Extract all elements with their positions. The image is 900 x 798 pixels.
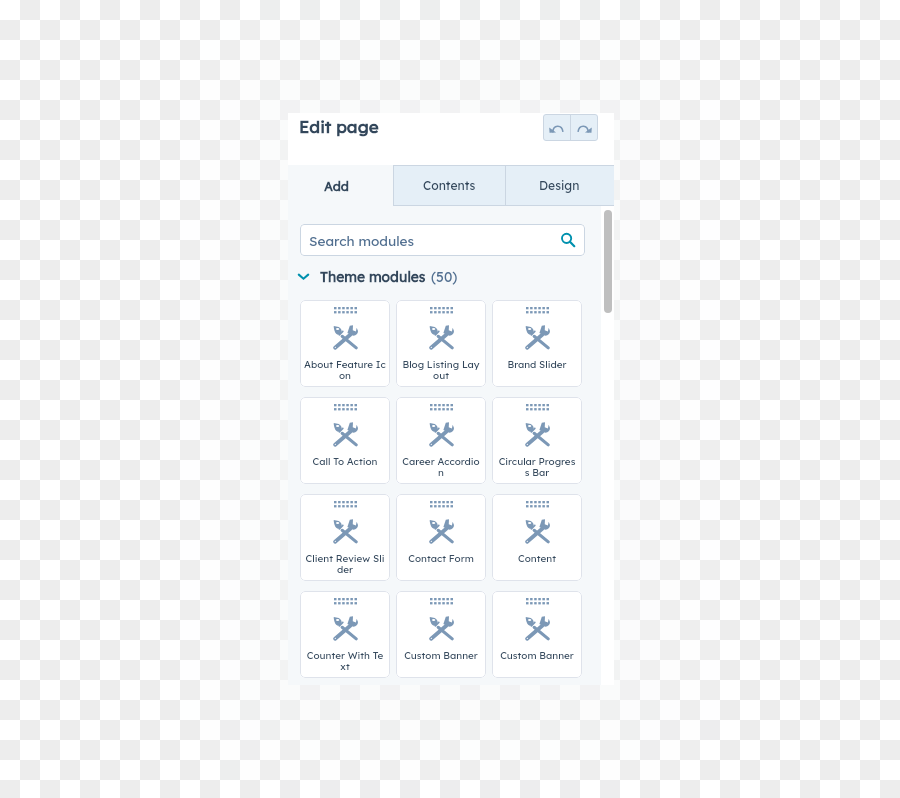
- button[interactable]: Call To Action: [300, 397, 390, 484]
- staticText: Contents: [423, 178, 476, 193]
- button[interactable]: Client Review Sli der: [300, 494, 390, 581]
- button[interactable]: About Feature Ic on: [300, 300, 390, 387]
- staticText: Content: [492, 552, 582, 564]
- staticText: About Feature Ic on: [300, 358, 390, 382]
- staticText: Edit page: [299, 116, 379, 137]
- button[interactable]: Theme modules: [298, 268, 458, 285]
- button[interactable]: Custom Banner: [492, 591, 582, 678]
- button[interactable]: Content: [492, 494, 582, 581]
- staticText: (50): [431, 268, 458, 285]
- button[interactable]: Blog Listing Lay out: [396, 300, 486, 387]
- staticText: Counter With Te xt: [300, 649, 390, 673]
- staticText: Career Accordio n: [396, 455, 486, 479]
- button[interactable]: Career Accordio n: [396, 397, 486, 484]
- button[interactable]: Redo: [571, 114, 598, 141]
- staticText: Custom Banner: [492, 649, 582, 661]
- staticText: Call To Action: [300, 455, 390, 467]
- staticText: Contact Form: [396, 552, 486, 564]
- staticText: Theme modules: [320, 268, 426, 285]
- staticText: Custom Banner: [396, 649, 486, 661]
- button[interactable]: Custom Banner: [396, 591, 486, 678]
- button[interactable]: Undo: [543, 114, 570, 141]
- staticText: Design: [539, 178, 580, 193]
- button[interactable]: Counter With Te xt: [300, 591, 390, 678]
- staticText: Client Review Sli der: [300, 552, 390, 576]
- staticText: Circular Progres s Bar: [492, 455, 582, 479]
- staticText: Blog Listing Lay out: [396, 358, 486, 382]
- button[interactable]: Circular Progres s Bar: [492, 397, 582, 484]
- button[interactable]: Contact Form: [396, 494, 486, 581]
- button[interactable]: Design: [505, 165, 614, 206]
- staticText: Search modules: [309, 232, 415, 249]
- staticText: Add: [324, 178, 349, 194]
- button[interactable]: Contents: [393, 165, 505, 206]
- staticText: Brand Slider: [492, 358, 582, 370]
- button[interactable]: Brand Slider: [492, 300, 582, 387]
- button[interactable]: Add: [288, 165, 393, 206]
- button[interactable]: Search modules: [300, 224, 585, 256]
